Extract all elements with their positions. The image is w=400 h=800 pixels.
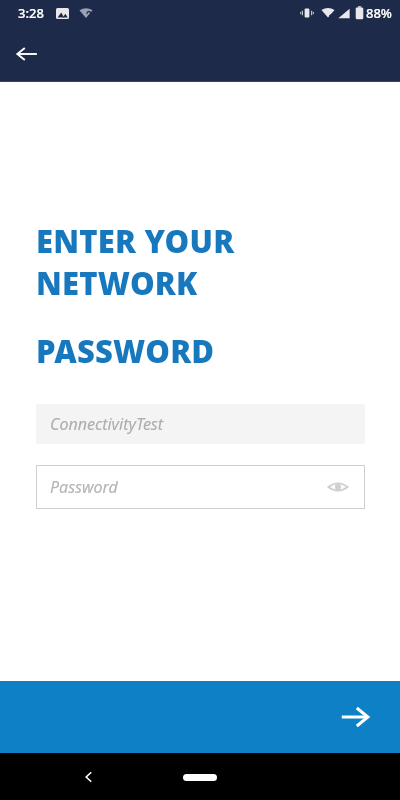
staticText: PASSWORD xyxy=(36,330,215,372)
staticText: ConnectivityTest xyxy=(50,413,164,435)
button[interactable]: Back xyxy=(72,760,106,794)
button[interactable]: ConnectivityTest xyxy=(36,404,365,444)
button[interactable]: Password xyxy=(36,465,365,509)
button[interactable]: Home xyxy=(177,761,223,793)
button[interactable]: Back xyxy=(10,37,44,71)
staticText: ENTER YOUR NETWORK xyxy=(36,220,376,304)
staticText: 88% xyxy=(366,4,392,22)
staticText: Password xyxy=(50,476,118,498)
staticText: 3:28 xyxy=(18,4,44,22)
button[interactable]: Next xyxy=(0,681,400,753)
button[interactable]: Show password xyxy=(325,474,351,500)
